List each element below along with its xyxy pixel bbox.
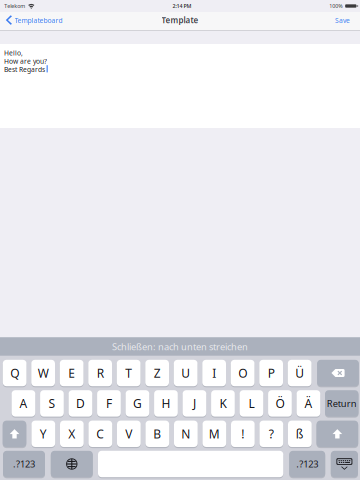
staticText: T <box>125 365 132 381</box>
button[interactable]: ß <box>288 420 312 448</box>
staticText: Telekom <box>4 2 25 10</box>
staticText: Ü <box>295 365 304 381</box>
staticText: Z <box>154 365 161 381</box>
button[interactable]: L <box>240 390 263 417</box>
button[interactable]: Return <box>325 390 358 417</box>
staticText: X <box>68 426 75 442</box>
staticText: Template <box>161 15 198 25</box>
staticText: N <box>181 426 190 442</box>
button[interactable]: Save <box>329 12 356 30</box>
button[interactable]: Q <box>3 359 26 387</box>
staticText: P <box>268 365 275 381</box>
staticText: .?123 <box>296 458 318 470</box>
button[interactable]: Next keyboard <box>51 450 93 478</box>
button[interactable]: .?123 <box>289 450 325 478</box>
button[interactable]: O <box>231 359 254 387</box>
button[interactable]: U <box>174 359 197 387</box>
staticText: G <box>133 395 142 411</box>
staticText: Best Regards <box>4 65 45 74</box>
staticText: W <box>38 365 49 381</box>
button[interactable]: H <box>154 390 178 417</box>
button[interactable]: I <box>202 359 226 387</box>
staticText: Y <box>40 426 47 442</box>
button[interactable]: D <box>69 390 92 417</box>
button[interactable]: Ä <box>297 390 320 417</box>
staticText: Ö <box>275 395 284 411</box>
staticText: ! <box>241 426 244 442</box>
staticText: E <box>68 365 75 381</box>
button[interactable]: F <box>97 390 121 417</box>
staticText: R <box>97 365 104 381</box>
button[interactable]: ? <box>259 420 283 448</box>
staticText: M <box>209 426 220 442</box>
staticText: C <box>96 426 104 442</box>
staticText: Hello, <box>4 49 23 57</box>
button[interactable]: .?123 <box>3 450 45 478</box>
staticText: Q <box>10 365 19 381</box>
button[interactable]: Shift <box>316 420 358 448</box>
staticText: Ä <box>304 395 312 411</box>
button[interactable]: ! <box>231 420 255 448</box>
staticText: Save <box>335 16 350 25</box>
button[interactable]: Z <box>145 359 169 387</box>
button[interactable]: Ü <box>288 359 311 387</box>
button[interactable]: Hide keyboard <box>331 450 358 478</box>
button[interactable]: Delete <box>317 359 359 387</box>
staticText: ß <box>296 426 304 442</box>
staticText: J <box>193 395 196 411</box>
button[interactable]: C <box>88 420 112 448</box>
button[interactable]: W <box>31 359 55 387</box>
staticText: Schließen: nach unten streichen <box>112 340 248 353</box>
staticText: 100% <box>329 2 342 10</box>
staticText: L <box>248 395 254 411</box>
staticText: D <box>76 395 85 411</box>
button[interactable]: Templateboard <box>0 12 69 30</box>
button[interactable]: J <box>183 390 206 417</box>
staticText: I <box>212 365 216 381</box>
button[interactable]: P <box>259 359 283 387</box>
button[interactable]: X <box>60 420 84 448</box>
button[interactable]: V <box>117 420 141 448</box>
button[interactable]: E <box>60 359 83 387</box>
staticText: ? <box>269 426 274 442</box>
button[interactable]: M <box>202 420 226 448</box>
staticText: B <box>153 426 161 442</box>
staticText: O <box>238 365 247 381</box>
button[interactable]: N <box>174 420 198 448</box>
staticText: How are you? <box>4 57 47 66</box>
button[interactable]: B <box>145 420 169 448</box>
staticText: Templateboard <box>15 16 63 25</box>
button[interactable]: Y <box>31 420 55 448</box>
staticText: .?123 <box>13 458 35 470</box>
button[interactable]: G <box>126 390 149 417</box>
button[interactable]: Ö <box>268 390 292 417</box>
staticText: A <box>19 395 27 411</box>
staticText: 2:14 PM <box>172 2 191 10</box>
staticText: H <box>161 395 170 411</box>
button[interactable]: Shift <box>3 420 26 448</box>
staticText: V <box>125 426 132 442</box>
staticText: S <box>48 395 55 411</box>
staticText: K <box>219 395 226 411</box>
button[interactable]: R <box>88 359 112 387</box>
button[interactable]: K <box>211 390 235 417</box>
staticText: Return <box>327 397 357 410</box>
button[interactable]: space <box>98 450 283 478</box>
staticText: U <box>181 365 190 381</box>
button[interactable]: A <box>12 390 35 417</box>
button[interactable]: S <box>40 390 64 417</box>
staticText: F <box>106 395 112 411</box>
button[interactable]: T <box>117 359 140 387</box>
